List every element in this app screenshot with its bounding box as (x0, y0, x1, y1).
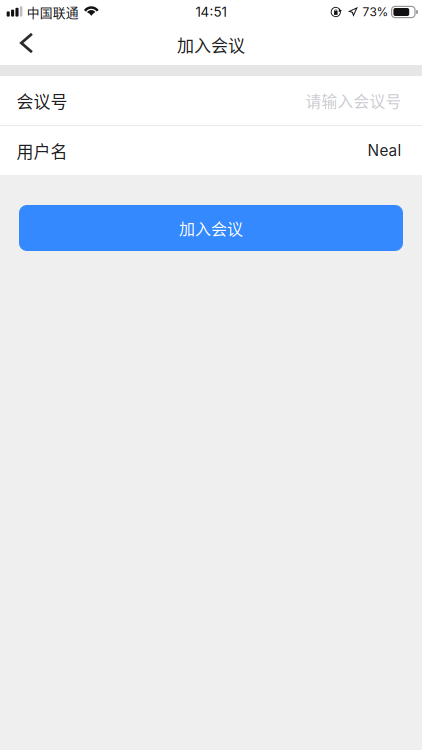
staticText: Neal (367, 141, 401, 160)
button[interactable]: Back (4, 22, 48, 66)
staticText: 用户名 (16, 138, 67, 163)
staticText: 会议号 (16, 88, 67, 113)
button[interactable]: 加入会议 (19, 205, 403, 251)
staticText: 加入会议 (177, 32, 245, 57)
staticText: 14:51 (195, 4, 226, 20)
staticText: 加入会议 (179, 216, 243, 240)
button[interactable]: 用户名 (0, 126, 422, 175)
staticText: 中国联通 (27, 3, 79, 21)
staticText: 请输入会议号 (305, 89, 401, 112)
staticText: 73% (363, 5, 389, 19)
button[interactable]: 会议号 (0, 76, 422, 125)
